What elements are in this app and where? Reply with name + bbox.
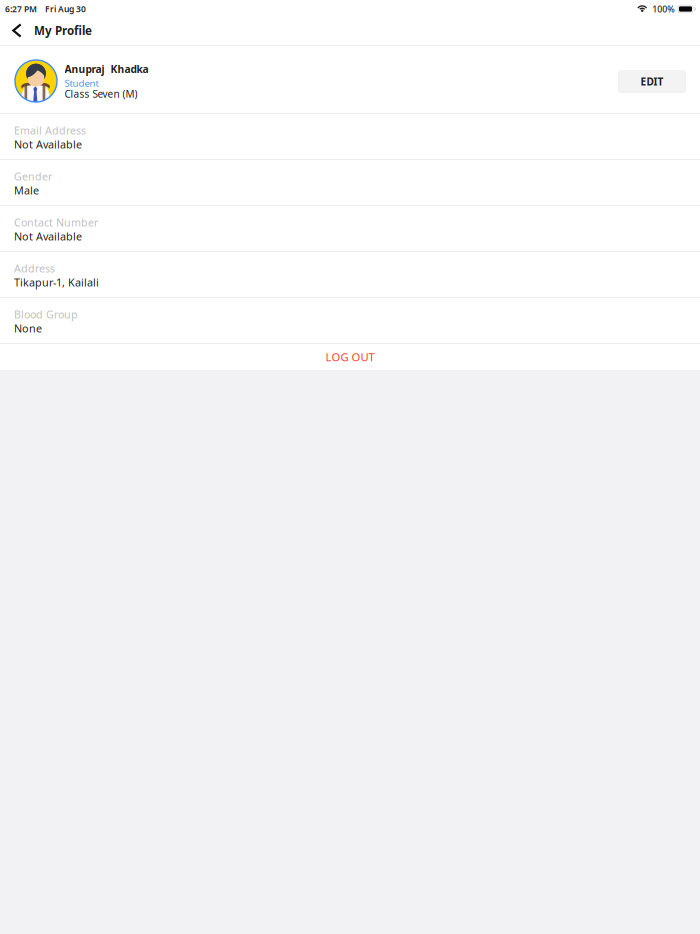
button[interactable]: EDIT: [618, 70, 686, 93]
staticText: Anupraj Khadka: [64, 62, 148, 76]
staticText: Blood Group: [14, 307, 78, 321]
staticText: Not Available: [14, 229, 82, 244]
staticText: Gender: [14, 169, 52, 183]
staticText: Fri Aug 30: [45, 3, 86, 15]
staticText: My Profile: [34, 23, 92, 38]
staticText: Email Address: [14, 123, 86, 137]
staticText: EDIT: [640, 75, 663, 88]
staticText: 6:27 PM: [5, 3, 37, 15]
staticText: Address: [14, 261, 55, 275]
staticText: 100%: [652, 3, 674, 15]
staticText: Tikapur-1, Kailali: [14, 275, 99, 290]
button[interactable]: Blood Group: [0, 298, 700, 343]
button[interactable]: Contact Number: [0, 206, 700, 251]
staticText: Not Available: [14, 137, 82, 152]
staticText: Student: [64, 76, 98, 90]
button[interactable]: LOG OUT: [0, 344, 700, 370]
staticText: None: [14, 321, 42, 336]
staticText: Male: [14, 183, 39, 198]
button[interactable]: Email Address: [0, 114, 700, 159]
staticText: LOG OUT: [325, 349, 374, 365]
button[interactable]: Back: [6, 18, 28, 45]
staticText: Class Seven (M): [64, 87, 137, 101]
button[interactable]: Address: [0, 252, 700, 297]
button[interactable]: Gender: [0, 160, 700, 205]
staticText: Contact Number: [14, 215, 98, 229]
